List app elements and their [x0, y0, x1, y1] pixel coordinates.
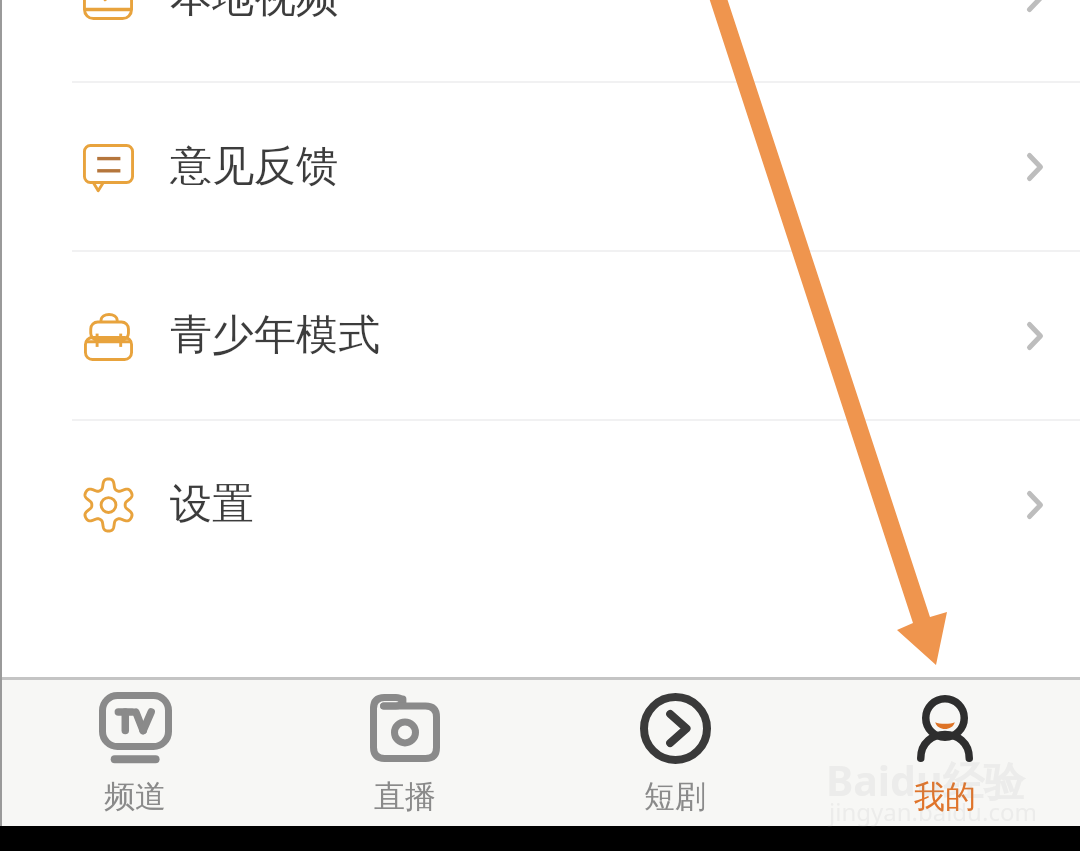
button[interactable]: 本地视频 [0, 0, 1080, 81]
button[interactable]: 意见反馈 [0, 83, 1080, 250]
button[interactable]: 青少年模式 [0, 252, 1080, 419]
button[interactable]: 直播 [270, 677, 540, 826]
staticText: jingyan.baidu.com [829, 795, 1037, 828]
button[interactable]: 设置 [0, 421, 1080, 588]
staticText: 直播 [374, 777, 436, 816]
button[interactable]: 频道 [0, 677, 270, 826]
staticText: 意见反馈 [170, 140, 338, 193]
staticText: 青少年模式 [170, 309, 380, 362]
staticText: 短剧 [644, 777, 706, 816]
staticText: Baidu经验 [826, 752, 1025, 808]
staticText: 我的 [914, 777, 976, 816]
staticText: 本地视频 [170, 0, 338, 24]
button[interactable]: 我的 [810, 677, 1080, 826]
button[interactable]: 短剧 [540, 677, 810, 826]
staticText: 设置 [170, 478, 254, 531]
staticText: 频道 [104, 777, 166, 816]
